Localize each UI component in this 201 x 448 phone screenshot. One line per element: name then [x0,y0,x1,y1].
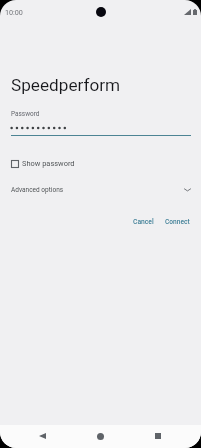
staticText: Connect [165,218,190,226]
button[interactable]: Recent apps [147,425,169,447]
button[interactable]: Back [31,425,53,447]
other: Battery [193,9,197,15]
button[interactable]: Advanced options [0,181,201,198]
staticText: 10:00 [5,8,23,16]
staticText: Speedperform [11,75,121,95]
staticText: Password [11,110,40,118]
button[interactable]: Home [89,425,111,447]
staticText: Show password [22,159,75,168]
button[interactable]: Cancel [128,215,159,229]
button[interactable]: Show password [11,159,75,168]
button[interactable]: Connect [160,215,195,229]
other: Mobile signal [184,9,191,15]
staticText: Advanced options [11,186,64,194]
staticText: Cancel [133,218,154,226]
